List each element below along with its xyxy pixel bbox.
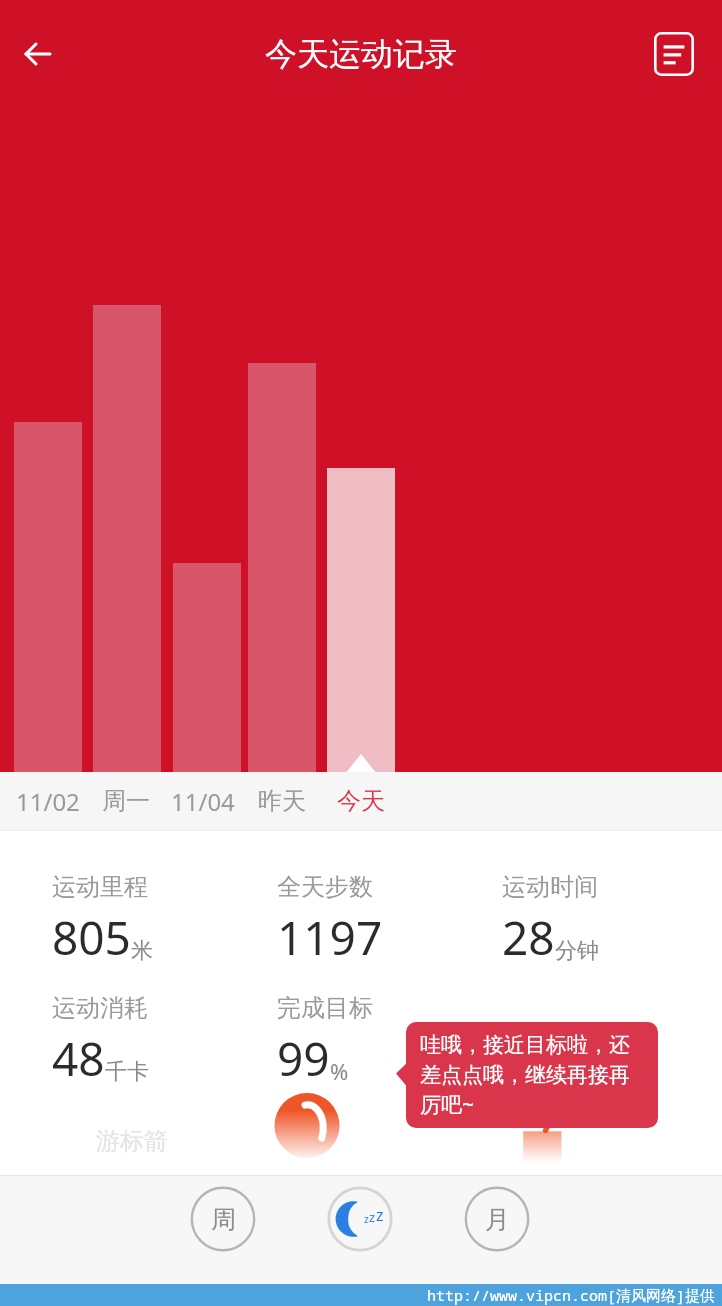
button[interactable]: 运动里程	[52, 872, 252, 969]
button[interactable]: Records list	[646, 26, 702, 82]
staticText: 运动消耗	[52, 993, 148, 1023]
staticText: %	[330, 1056, 349, 1086]
button[interactable]: 月	[464, 1186, 530, 1252]
staticText: 分钟	[555, 937, 599, 965]
staticText: http://www.vipcn.com[清风网络]提供	[427, 1285, 716, 1305]
button[interactable]: 昨天	[243, 772, 321, 830]
staticText: 28	[502, 906, 555, 969]
button[interactable]: 今天	[322, 772, 400, 830]
button[interactable]: 11/02	[9, 772, 87, 830]
button[interactable]: Back	[6, 22, 70, 86]
button[interactable]: 运动消耗	[52, 993, 252, 1090]
staticText: 昨天	[258, 786, 306, 816]
staticText: 完成目标	[277, 993, 373, 1023]
staticText: 48	[52, 1027, 105, 1090]
button[interactable]: Sleep	[327, 1186, 393, 1252]
staticText: 99	[277, 1027, 330, 1090]
button[interactable]: 全天步数	[277, 872, 477, 969]
staticText: 米	[131, 937, 153, 965]
staticText: 周	[211, 1204, 236, 1235]
staticText: 11/02	[16, 785, 80, 818]
button[interactable]: 哇哦，接近目标啦，还差点点哦，继续再接再厉吧~	[406, 1022, 658, 1128]
staticText: 1197	[277, 906, 383, 969]
staticText: 11/04	[171, 785, 235, 818]
button[interactable]: 周一	[87, 772, 165, 830]
staticText: 运动时间	[502, 872, 598, 902]
staticText: 今天运动记录	[265, 34, 457, 74]
staticText: 千卡	[105, 1058, 149, 1086]
staticText: 805	[52, 906, 131, 969]
button[interactable]: 运动时间	[502, 872, 702, 969]
button[interactable]: 完成目标	[277, 993, 477, 1090]
staticText: 全天步数	[277, 872, 373, 902]
staticText: z	[364, 1212, 369, 1226]
staticText: 今天	[337, 786, 385, 816]
staticText: z	[376, 1204, 384, 1226]
staticText: 月	[485, 1204, 510, 1235]
button[interactable]: 11/04	[164, 772, 242, 830]
staticText: 周一	[102, 786, 150, 816]
staticText: 哇哦，接近目标啦，还差点点哦，继续再接再厉吧~	[420, 1032, 644, 1118]
staticText: 游标箭	[96, 1126, 168, 1156]
staticText: 运动里程	[52, 872, 148, 902]
button[interactable]: 周	[190, 1186, 256, 1252]
staticText: z	[369, 1208, 376, 1226]
